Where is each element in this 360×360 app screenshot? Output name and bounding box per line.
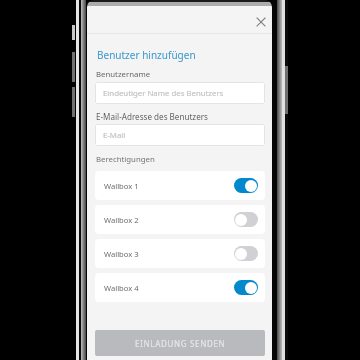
- button[interactable]: Wallbox 3: [95, 239, 265, 268]
- staticText: Benutzer hinzufügen: [97, 48, 196, 62]
- button[interactable]: Schliessen: [251, 12, 271, 32]
- staticText: E-Mail-Adresse des Benutzers: [96, 111, 208, 122]
- staticText: Eindeutiger Name des Benutzers: [103, 88, 224, 99]
- button[interactable]: Wallbox 3 aus: [234, 246, 258, 261]
- button[interactable]: Wallbox 1 an: [234, 178, 258, 193]
- staticText: Wallbox 3: [104, 249, 139, 259]
- staticText: Wallbox 2: [104, 215, 139, 225]
- button[interactable]: Wallbox 2 aus: [234, 212, 258, 227]
- button[interactable]: Wallbox 1: [95, 171, 265, 200]
- staticText: Wallbox 1: [104, 181, 139, 191]
- button[interactable]: Wallbox 4: [95, 273, 265, 302]
- staticText: Berechtigungen: [96, 154, 155, 165]
- button[interactable]: Wallbox 2: [95, 205, 265, 234]
- staticText: EINLADUNG SENDEN: [135, 338, 226, 349]
- staticText: Wallbox 4: [104, 283, 139, 293]
- button[interactable]: Eindeutiger Name des Benutzers: [95, 82, 265, 104]
- staticText: Benutzername: [96, 69, 151, 80]
- button[interactable]: E-Mail: [95, 124, 265, 146]
- button[interactable]: Wallbox 4 an: [234, 280, 258, 295]
- button[interactable]: EINLADUNG SENDEN: [95, 330, 265, 356]
- staticText: E-Mail: [103, 130, 126, 141]
